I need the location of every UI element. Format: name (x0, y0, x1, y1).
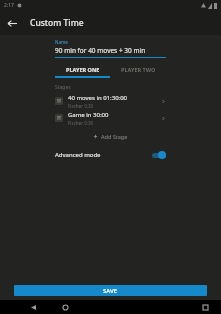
button[interactable]: Game in 30:00 (55, 111, 166, 125)
staticText: Fischer 0:30 (68, 120, 94, 125)
button[interactable]: Back (25, 300, 41, 314)
staticText: 40 moves in 01:30:00 (68, 94, 128, 102)
staticText: Game in 30:00 (68, 111, 109, 119)
staticText: Custom Time (30, 17, 84, 29)
staticText: Advanced mode (55, 151, 101, 159)
staticText: 90 min for 40 moves + 30 min (55, 46, 146, 55)
staticText: PLAYER TWO (121, 66, 156, 73)
button[interactable]: SAVE (14, 285, 207, 296)
button[interactable]: Home (57, 300, 73, 314)
button[interactable]: Advanced mode (55, 148, 166, 162)
staticText: Stages (55, 84, 71, 91)
staticText: 2:17 (4, 2, 14, 9)
staticText: PLAYER ONE (66, 66, 100, 73)
staticText: Fischer 0:30 (68, 103, 94, 108)
button[interactable]: Recent apps (197, 300, 213, 314)
button[interactable]: PLAYER TWO (110, 63, 166, 76)
button[interactable]: Back (0, 11, 24, 35)
staticText: Name (55, 39, 68, 45)
button[interactable]: PLAYER ONE (55, 63, 110, 76)
staticText: SAVE (103, 287, 118, 295)
button[interactable]: Name (55, 39, 166, 58)
button[interactable]: Add Stage (87, 131, 134, 142)
button[interactable]: 40 moves in 01:30:00 (55, 94, 166, 108)
staticText: Add Stage (101, 133, 128, 140)
